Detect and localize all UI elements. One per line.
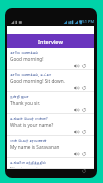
button[interactable]: நன்றி ஐயா (7, 92, 94, 114)
staticText: What is your name? (10, 122, 54, 128)
button[interactable]: Play audio (73, 62, 79, 69)
button[interactable]: உங்கள் பெயர் என்ன? (7, 114, 94, 136)
staticText: My name is Saravanan (10, 144, 60, 150)
button[interactable]: Repeat (81, 62, 87, 69)
staticText: Thank you sir. (10, 100, 40, 106)
staticText: Good morning! Sit down. (10, 78, 65, 84)
staticText: உங்கள் பெயர் என்ன? (10, 116, 48, 122)
staticText: Interview (38, 38, 63, 45)
button[interactable]: Repeat (81, 128, 87, 135)
staticText: Good morning! (10, 56, 44, 62)
button[interactable]: Repeat (81, 84, 87, 91)
button[interactable]: காலை வணக்கம் (7, 48, 94, 70)
button[interactable]: Repeat (81, 106, 87, 113)
staticText: நன்றி ஐயா (10, 94, 29, 100)
button[interactable]: காலை வணக்கம், உட்கா (7, 70, 94, 92)
staticText: 6:51 PM (79, 19, 95, 24)
staticText: உங்களை சந்தித்ததில் (10, 160, 46, 166)
button[interactable]: Interview (7, 34, 94, 48)
staticText: Nice to meet you (10, 166, 48, 169)
button[interactable]: Play audio (73, 150, 79, 157)
staticText: என் பெயர் சரவணன் (10, 138, 47, 144)
button[interactable]: Play audio (73, 106, 79, 113)
button[interactable]: உங்களை சந்தித்ததில் (7, 158, 94, 169)
button[interactable]: Repeat (81, 150, 87, 157)
staticText: காலை வணக்கம், உட்கா (10, 72, 52, 78)
button[interactable]: Play audio (73, 84, 79, 91)
staticText: காலை வணக்கம் (10, 50, 39, 56)
button[interactable]: என் பெயர் சரவணன் (7, 136, 94, 158)
button[interactable]: Play audio (73, 128, 79, 135)
